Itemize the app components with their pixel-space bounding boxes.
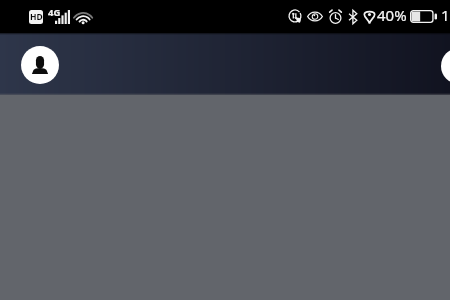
button[interactable]: Profile [21,46,59,84]
button[interactable]: Contact [441,48,450,84]
staticText: 40% [377,5,407,25]
staticText: 4G [48,6,61,19]
staticText: 1 [441,5,450,25]
staticText: HD [30,11,43,23]
